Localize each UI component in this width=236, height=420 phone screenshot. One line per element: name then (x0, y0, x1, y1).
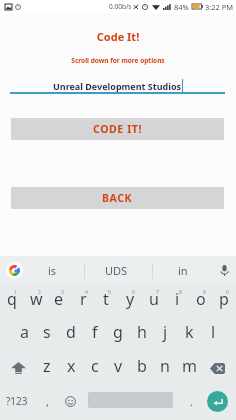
button[interactable]: t (94, 285, 118, 313)
staticText: r (80, 288, 87, 310)
staticText: , (46, 394, 49, 409)
staticText: 1 (14, 289, 17, 296)
staticText: Scroll down for more options (0, 56, 236, 65)
staticText: 84% (174, 2, 189, 12)
button[interactable]: f (83, 318, 107, 346)
button[interactable]: g (106, 318, 130, 346)
button[interactable]: r (71, 285, 95, 313)
button[interactable]: n (153, 352, 177, 380)
staticText: k (185, 321, 194, 343)
staticText: BACK (102, 191, 133, 205)
button[interactable]: is (28, 257, 76, 283)
staticText: t (103, 288, 109, 310)
staticText: d (66, 321, 76, 343)
button[interactable]: p (212, 285, 236, 313)
button[interactable]: Shift (3, 354, 33, 382)
staticText: 9 (203, 289, 206, 296)
staticText: is (48, 263, 57, 278)
button[interactable]: l (201, 318, 225, 346)
button[interactable]: a (12, 318, 36, 346)
staticText: 6 (132, 289, 135, 296)
staticText: c (91, 355, 99, 377)
staticText: Code It! (0, 29, 236, 44)
staticText: o (196, 288, 206, 310)
staticText: 4 (85, 289, 88, 296)
staticText: a (20, 321, 29, 343)
staticText: 5 (108, 289, 111, 296)
staticText: s (43, 321, 51, 343)
button[interactable]: q (0, 285, 24, 313)
staticText: 0 (226, 289, 229, 296)
button[interactable]: j (153, 318, 177, 346)
button[interactable]: UDS (93, 257, 140, 283)
staticText: UDS (105, 263, 128, 278)
staticText: v (114, 355, 123, 377)
staticText: e (54, 288, 64, 310)
staticText: x (67, 355, 76, 377)
staticText: . (190, 394, 193, 409)
button[interactable]: z (35, 352, 59, 380)
button[interactable]: Enter (207, 391, 228, 412)
button[interactable]: Google (6, 262, 23, 279)
staticText: i (175, 288, 180, 310)
button[interactable]: v (106, 352, 130, 380)
staticText: f (92, 321, 98, 343)
button[interactable]: k (177, 318, 201, 346)
staticText: q (7, 288, 17, 310)
button[interactable]: Backspace (202, 354, 232, 382)
staticText: n (160, 355, 170, 377)
button[interactable]: ?123 (0, 386, 34, 416)
staticText: 0.00b/s (109, 2, 132, 11)
button[interactable]: x (59, 352, 83, 380)
button[interactable]: BACK (11, 187, 224, 209)
button[interactable]: c (83, 352, 107, 380)
button[interactable]: . (180, 386, 202, 416)
button[interactable]: , (36, 386, 58, 416)
staticText: Unreal Development Studios (53, 80, 182, 92)
button[interactable]: CODE IT! (11, 118, 224, 140)
button[interactable]: i (165, 285, 189, 313)
button[interactable]: b (130, 352, 154, 380)
button[interactable]: e (47, 285, 71, 313)
staticText: l (211, 321, 216, 343)
staticText: y (126, 288, 135, 310)
button[interactable]: u (142, 285, 166, 313)
staticText: m (182, 355, 197, 377)
button[interactable]: w (24, 285, 48, 313)
staticText: in (178, 263, 188, 278)
staticText: 7 (156, 289, 159, 296)
staticText: j (163, 321, 168, 343)
staticText: h (137, 321, 147, 343)
button[interactable]: Voice input (211, 257, 236, 283)
staticText: b (137, 355, 147, 377)
button[interactable]: in (160, 257, 206, 283)
staticText: z (43, 355, 51, 377)
staticText: 2 (38, 289, 41, 296)
button[interactable]: h (130, 318, 154, 346)
button[interactable]: m (177, 352, 201, 380)
button[interactable]: y (118, 285, 142, 313)
staticText: 3 (61, 289, 64, 296)
button[interactable]: o (189, 285, 213, 313)
button[interactable]: d (59, 318, 83, 346)
staticText: CODE IT! (93, 122, 143, 136)
staticText: w (30, 288, 43, 310)
staticText: p (219, 288, 229, 310)
staticText: g (113, 321, 123, 343)
button[interactable]: s (35, 318, 59, 346)
staticText: 3:22 PM (205, 2, 234, 12)
staticText: u (149, 288, 159, 310)
staticText: 8 (179, 289, 182, 296)
button[interactable]: Emoji (59, 386, 81, 416)
staticText: ?123 (6, 394, 28, 408)
